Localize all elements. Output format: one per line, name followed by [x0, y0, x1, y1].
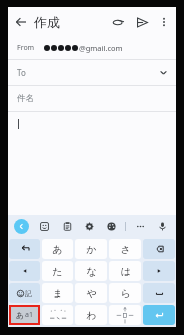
button[interactable]: Backspace — [143, 239, 175, 259]
button[interactable]: Switch input mode — [9, 305, 40, 325]
button[interactable]: さ — [109, 239, 141, 259]
staticText: 1 — [29, 310, 34, 320]
button[interactable] — [8, 112, 176, 215]
button[interactable]: Stickers — [36, 218, 52, 234]
button[interactable]: Attach file — [106, 10, 130, 34]
button[interactable]: Back — [8, 9, 34, 35]
button[interactable]: Emoji and symbols — [9, 283, 40, 303]
staticText: か — [86, 243, 97, 256]
staticText: ら — [120, 287, 131, 300]
button[interactable]: Enter — [143, 305, 175, 325]
button[interactable]: わ — [75, 305, 107, 325]
staticText: や — [86, 287, 97, 300]
staticText: ま — [52, 287, 63, 300]
button[interactable]: More options — [154, 12, 174, 32]
staticText: From — [17, 43, 35, 53]
staticText: は — [120, 265, 131, 278]
button[interactable]: To — [8, 60, 176, 85]
staticText: To — [17, 67, 26, 78]
button[interactable]: Emoticons — [42, 305, 73, 325]
staticText: わ — [86, 309, 97, 322]
button[interactable]: 件名 — [8, 86, 176, 111]
button[interactable]: Undo — [9, 239, 40, 259]
button[interactable]: From — [8, 37, 176, 59]
button[interactable]: や — [75, 283, 107, 303]
staticText: あ — [16, 310, 25, 320]
staticText: さ — [120, 243, 131, 256]
button[interactable]: あ — [42, 239, 73, 259]
button[interactable]: は — [109, 261, 141, 281]
staticText: た — [52, 265, 63, 278]
button[interactable]: な — [75, 261, 107, 281]
staticText: 作成 — [34, 14, 60, 30]
staticText: a — [25, 310, 29, 320]
button[interactable]: Voice input — [154, 218, 170, 234]
button[interactable]: Clipboard — [59, 218, 75, 234]
button[interactable]: Collapse toolbar — [14, 219, 29, 234]
button[interactable]: More — [132, 218, 148, 234]
button[interactable]: Send — [130, 10, 154, 34]
button[interactable]: Move cursor left — [9, 261, 40, 281]
button[interactable]: ら — [109, 283, 141, 303]
staticText: 記 — [25, 289, 32, 298]
button[interactable]: Cursor keys — [109, 305, 141, 325]
button[interactable]: Theme — [103, 218, 119, 234]
button[interactable]: Move cursor right — [143, 261, 175, 281]
staticText: あ — [52, 243, 63, 256]
staticText: @gmail.com — [79, 43, 123, 53]
button[interactable]: た — [42, 261, 73, 281]
button[interactable]: Space — [143, 283, 175, 303]
staticText: 件名 — [17, 93, 34, 104]
button[interactable]: か — [75, 239, 107, 259]
button[interactable]: ま — [42, 283, 73, 303]
button[interactable]: Settings — [81, 218, 97, 234]
staticText: な — [86, 265, 97, 278]
